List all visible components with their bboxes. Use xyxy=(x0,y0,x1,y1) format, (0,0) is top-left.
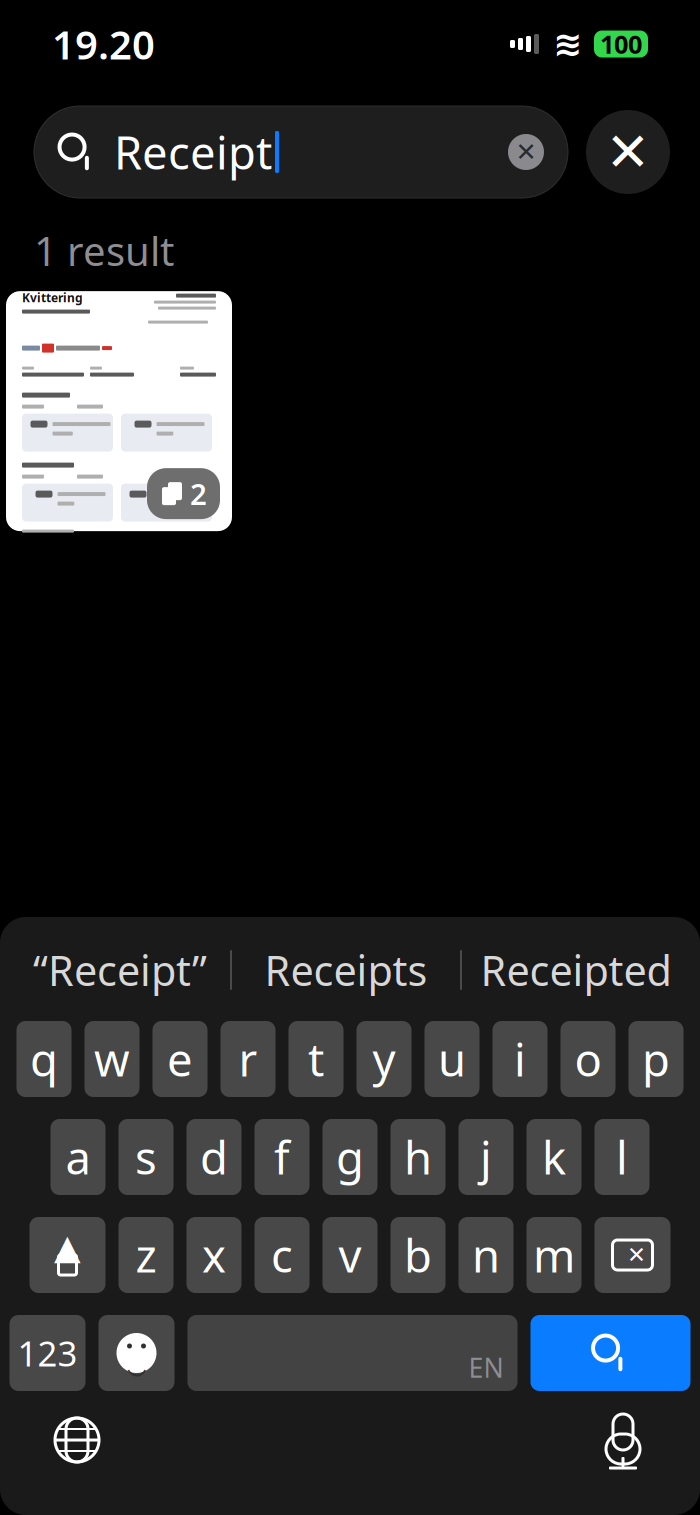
staticText: ✕ xyxy=(515,138,536,166)
button[interactable]: s xyxy=(118,1119,173,1195)
staticText: b xyxy=(404,1225,432,1285)
button[interactable]: Search xyxy=(530,1315,690,1391)
staticText: i xyxy=(514,1029,526,1089)
staticText: Receipted xyxy=(480,943,671,997)
button[interactable]: Dictate xyxy=(588,1405,658,1475)
staticText: v xyxy=(338,1225,361,1285)
button[interactable]: u xyxy=(424,1021,479,1097)
staticText: y xyxy=(372,1029,395,1089)
button[interactable]: v xyxy=(322,1217,377,1293)
staticText: m xyxy=(533,1225,575,1285)
button[interactable]: Emoji xyxy=(98,1315,174,1391)
button[interactable]: Kvittering receipt, 2 pages xyxy=(6,291,232,531)
button[interactable]: c xyxy=(254,1217,309,1293)
staticText: 19.20 xyxy=(52,17,155,70)
button[interactable]: h xyxy=(390,1119,445,1195)
staticText: 2 xyxy=(190,474,207,513)
button[interactable]: t xyxy=(288,1021,343,1097)
staticText: Kvittering xyxy=(22,290,83,306)
button[interactable]: g xyxy=(322,1119,377,1195)
staticText: g xyxy=(336,1127,364,1187)
button[interactable]: Space xyxy=(187,1315,517,1391)
staticText: 100 xyxy=(600,27,642,61)
staticText: n xyxy=(472,1225,500,1285)
button[interactable]: Receipt xyxy=(34,106,568,198)
staticText: ▲ xyxy=(54,1227,81,1267)
staticText: l xyxy=(616,1127,628,1187)
button[interactable]: Delete xyxy=(594,1217,670,1293)
staticText: Receipt xyxy=(114,122,272,182)
staticText: x xyxy=(202,1225,226,1285)
button[interactable]: y xyxy=(356,1021,411,1097)
button[interactable]: m xyxy=(526,1217,581,1293)
staticText: ≋ xyxy=(553,24,582,64)
button[interactable]: q xyxy=(16,1021,71,1097)
staticText: w xyxy=(94,1029,130,1089)
staticText: u xyxy=(438,1029,466,1089)
button[interactable]: Receipted xyxy=(462,936,690,1004)
button[interactable]: j xyxy=(458,1119,513,1195)
staticText: t xyxy=(308,1029,324,1089)
button[interactable]: Shift xyxy=(29,1217,105,1293)
staticText: s xyxy=(135,1127,157,1187)
button[interactable]: i xyxy=(492,1021,547,1097)
button[interactable]: r xyxy=(220,1021,275,1097)
staticText: d xyxy=(200,1127,228,1187)
staticText: h xyxy=(404,1127,432,1187)
button[interactable]: Receipts xyxy=(232,936,460,1004)
button[interactable]: d xyxy=(186,1119,241,1195)
staticText: r xyxy=(238,1029,257,1089)
staticText: “Receipt” xyxy=(33,943,207,997)
button[interactable]: 123 xyxy=(9,1315,85,1391)
staticText: ✕ xyxy=(627,1242,646,1268)
staticText: 1 result xyxy=(34,224,174,277)
button[interactable]: f xyxy=(254,1119,309,1195)
staticText: z xyxy=(135,1225,156,1285)
button[interactable]: Change keyboard language xyxy=(42,1405,112,1475)
button[interactable]: “Receipt” xyxy=(10,936,230,1004)
button[interactable]: x xyxy=(186,1217,241,1293)
button[interactable]: o xyxy=(560,1021,615,1097)
staticText: ✕ xyxy=(605,122,650,182)
button[interactable]: w xyxy=(84,1021,139,1097)
staticText: k xyxy=(542,1127,566,1187)
staticText: EN xyxy=(468,1350,503,1385)
staticText: o xyxy=(574,1029,601,1089)
button[interactable]: p xyxy=(628,1021,683,1097)
button[interactable]: k xyxy=(526,1119,581,1195)
button[interactable]: n xyxy=(458,1217,513,1293)
button[interactable]: a xyxy=(50,1119,105,1195)
button[interactable]: z xyxy=(118,1217,173,1293)
staticText: p xyxy=(642,1029,670,1089)
staticText: f xyxy=(274,1127,290,1187)
button[interactable]: e xyxy=(152,1021,207,1097)
staticText: e xyxy=(167,1029,193,1089)
staticText: c xyxy=(271,1225,293,1285)
button[interactable]: l xyxy=(594,1119,649,1195)
staticText: a xyxy=(65,1127,90,1187)
button[interactable]: Close search xyxy=(586,110,670,194)
staticText: 123 xyxy=(17,1330,77,1376)
staticText: Receipts xyxy=(264,943,427,997)
button[interactable]: b xyxy=(390,1217,445,1293)
staticText: q xyxy=(30,1029,58,1089)
staticText: ‿ xyxy=(127,1335,146,1377)
staticText: j xyxy=(480,1127,492,1187)
